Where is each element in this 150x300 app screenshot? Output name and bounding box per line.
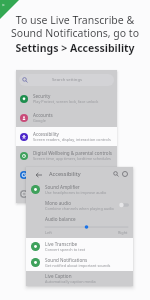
- button[interactable]: Account: [121, 170, 129, 178]
- staticText: Left: [45, 230, 52, 235]
- staticText: Accessibility: [33, 131, 59, 137]
- staticText: Right: [118, 230, 128, 235]
- button[interactable]: Sound Notifications: [26, 254, 133, 271]
- staticText: Accessibility: [49, 170, 81, 178]
- button[interactable]: Accessibility: [16, 127, 117, 146]
- staticText: Convert speech to text: [45, 247, 86, 252]
- staticText: Sound Notifications: [45, 257, 88, 263]
- button[interactable]: Back: [34, 170, 43, 179]
- staticText: Settings > Accessibility: [15, 41, 135, 55]
- staticText: Sound Amplifier: [45, 184, 80, 190]
- staticText: Audio balance: [45, 216, 76, 222]
- staticText: Google: [33, 169, 49, 175]
- staticText: Services & preferences: [33, 175, 74, 180]
- staticText: System: [33, 188, 49, 194]
- button[interactable]: Google: [16, 165, 117, 184]
- staticText: Screen time, app timers, bedtime schedul…: [33, 156, 111, 161]
- button[interactable]: Audio balance: [26, 213, 133, 238]
- staticText: Accounts: [33, 112, 53, 118]
- button[interactable]: Security: [16, 89, 117, 108]
- button[interactable]: Accounts: [16, 108, 117, 127]
- staticText: Live Caption: [45, 273, 72, 279]
- staticText: Get notified about important sounds: [45, 263, 111, 268]
- staticText: Digital Wellbeing & parental controls: [33, 150, 113, 156]
- staticText: Live Transcribe: [45, 241, 78, 247]
- staticText: Security: [33, 93, 51, 99]
- staticText: Search settings: [52, 77, 82, 83]
- staticText: Play Protect, screen lock, face unlock: [33, 99, 99, 104]
- button[interactable]: System: [16, 184, 117, 203]
- staticText: Google: [33, 118, 46, 123]
- staticText: Mono audio: [45, 200, 71, 206]
- button[interactable]: Sound Amplifier: [26, 181, 133, 197]
- button[interactable]: Search: [112, 170, 120, 178]
- button[interactable]: Live Caption: [26, 271, 133, 286]
- button[interactable]: Mono audio: [26, 197, 133, 213]
- staticText: Combine channels when playing audio: [45, 206, 114, 211]
- staticText: Automatically caption media: [45, 279, 96, 284]
- button[interactable]: Live Transcribe: [26, 238, 133, 254]
- staticText: Screen readers, display, interaction con…: [33, 137, 111, 142]
- button[interactable]: Search settings: [19, 74, 114, 86]
- staticText: Use headphones to improve audio: [45, 190, 107, 195]
- staticText: To use Live Transcribe & Sound Notificat…: [11, 13, 139, 40]
- button[interactable]: Digital Wellbeing & parental controls: [16, 146, 117, 165]
